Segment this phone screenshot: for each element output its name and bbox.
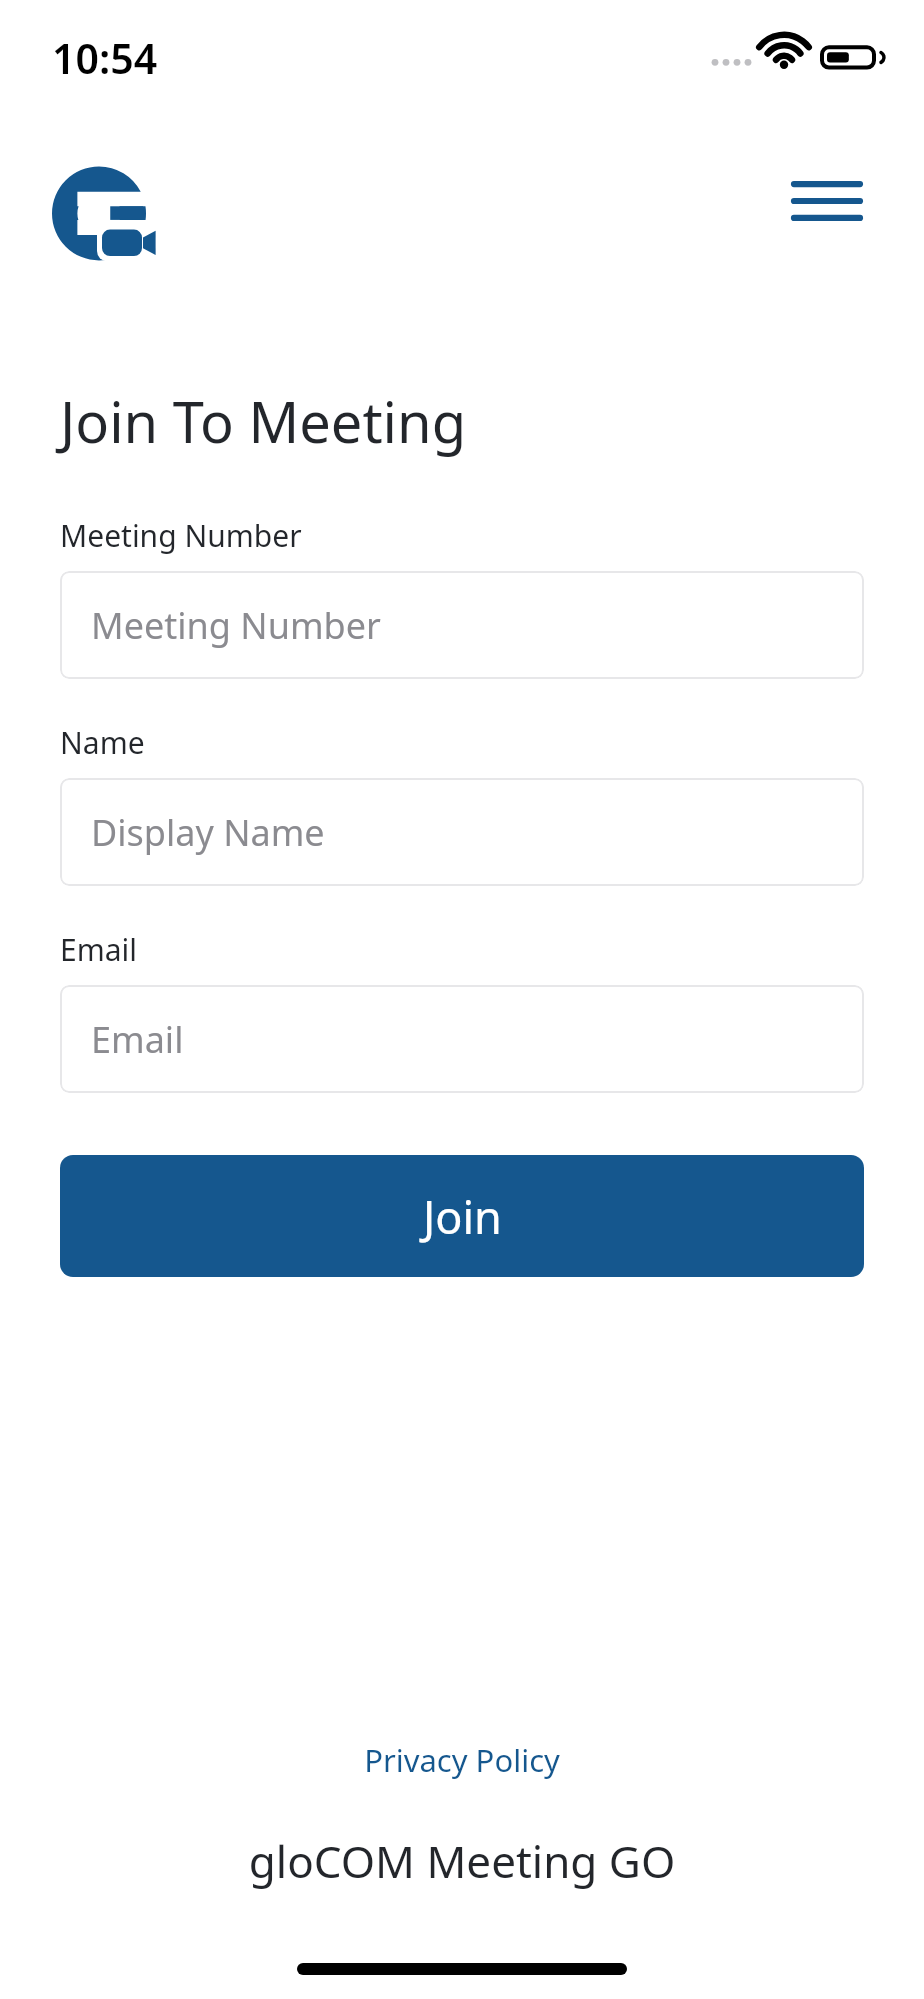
- button[interactable]: Menu: [782, 164, 872, 238]
- button[interactable]: Display Name: [60, 778, 864, 886]
- staticText: Name: [60, 722, 145, 763]
- button[interactable]: Privacy Policy: [344, 1731, 580, 1789]
- button[interactable]: Join: [60, 1155, 864, 1277]
- staticText: Display Name: [91, 808, 325, 857]
- staticText: Meeting Number: [91, 601, 381, 650]
- staticText: gloCOM Meeting GO: [0, 1831, 924, 1891]
- staticText: 10:54: [52, 30, 158, 86]
- staticText: Meeting Number: [60, 515, 302, 556]
- staticText: Join To Meeting: [60, 383, 467, 459]
- button[interactable]: Meeting Number: [60, 571, 864, 679]
- staticText: Join: [423, 1186, 502, 1247]
- button[interactable]: Email: [60, 985, 864, 1093]
- staticText: Email: [91, 1015, 184, 1064]
- button[interactable]: gloCOM Meeting GO logo: [52, 162, 152, 260]
- staticText: Email: [60, 929, 138, 970]
